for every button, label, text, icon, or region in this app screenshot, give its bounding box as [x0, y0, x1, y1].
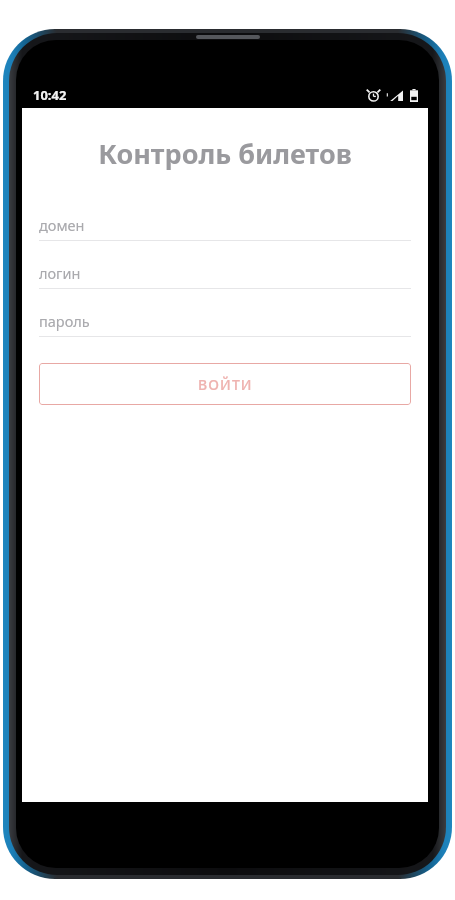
other: Signal strength	[387, 89, 403, 102]
button[interactable]: ВОЙТИ	[39, 363, 411, 405]
button[interactable]: пароль	[39, 306, 411, 337]
button[interactable]: домен	[39, 210, 411, 241]
staticText: Контроль билетов	[22, 135, 428, 172]
staticText: логин	[39, 263, 81, 283]
staticText: пароль	[39, 311, 90, 331]
staticText: домен	[39, 215, 85, 235]
other: Alarm	[367, 89, 380, 102]
staticText: ВОЙТИ	[198, 375, 253, 394]
other: Battery	[410, 89, 418, 102]
button[interactable]: логин	[39, 258, 411, 289]
staticText: 10:42	[33, 86, 67, 104]
